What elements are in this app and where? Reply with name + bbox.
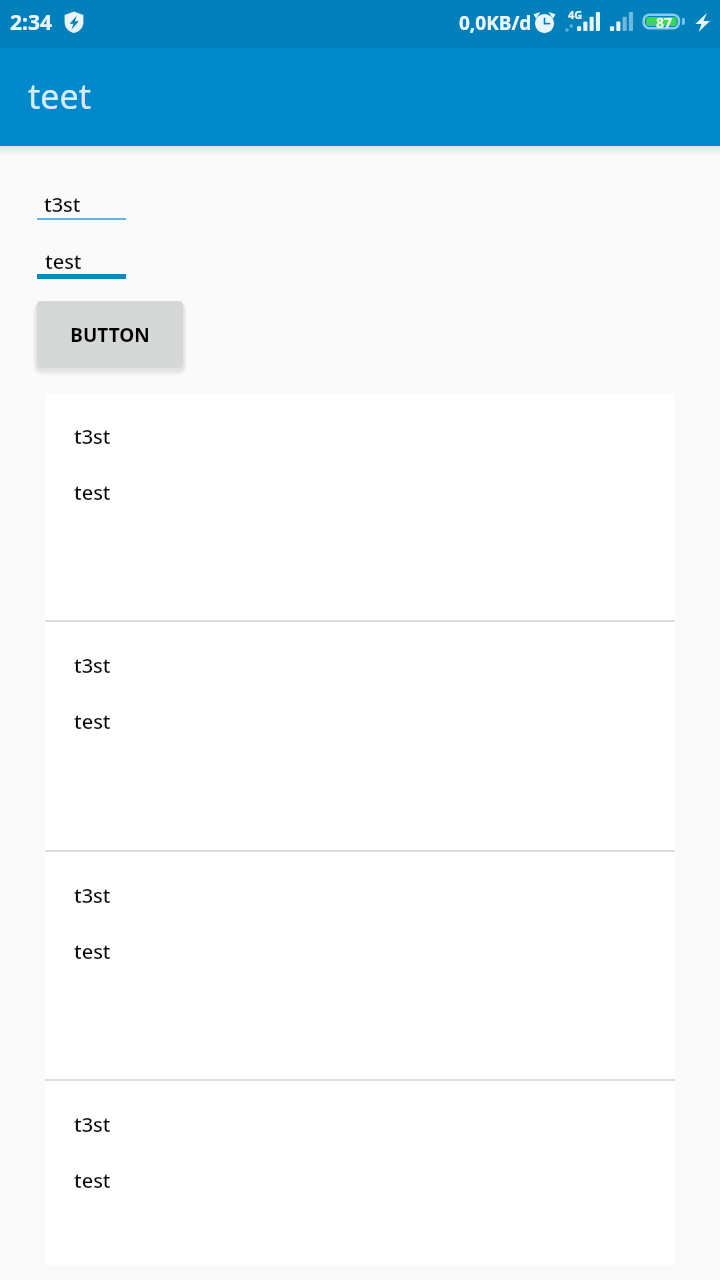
- staticText: test: [45, 248, 82, 275]
- staticText: test: [74, 938, 111, 965]
- staticText: BUTTON: [70, 322, 150, 348]
- staticText: teet: [28, 73, 91, 119]
- staticText: 4G: [568, 7, 583, 22]
- button[interactable]: t3st: [45, 1081, 675, 1265]
- staticText: t3st: [74, 652, 111, 679]
- staticText: t3st: [44, 191, 81, 218]
- staticText: 0,0KB/d: [459, 10, 532, 36]
- button[interactable]: t3st: [45, 622, 675, 850]
- button[interactable]: Text field test: [37, 243, 126, 279]
- staticText: t3st: [74, 882, 111, 909]
- staticText: test: [74, 708, 111, 735]
- button[interactable]: t3st: [45, 393, 675, 620]
- staticText: t3st: [74, 1111, 111, 1138]
- staticText: test: [74, 479, 111, 506]
- button[interactable]: t3st: [45, 852, 675, 1079]
- button[interactable]: BUTTON: [37, 301, 183, 368]
- staticText: t3st: [74, 423, 111, 450]
- button[interactable]: Text field t3st: [37, 185, 126, 221]
- staticText: test: [74, 1167, 111, 1194]
- staticText: 87: [656, 13, 673, 30]
- staticText: 2:34: [10, 8, 52, 37]
